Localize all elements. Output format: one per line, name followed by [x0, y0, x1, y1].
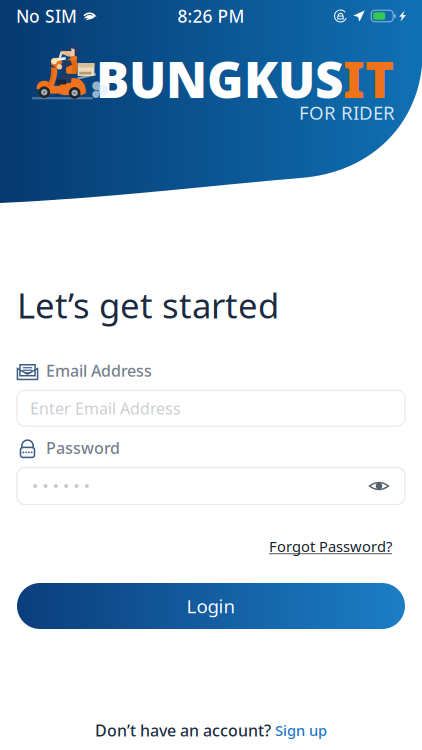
staticText: BUNGKUS: [96, 46, 343, 111]
button[interactable]: Show password: [366, 474, 392, 498]
staticText: IT: [343, 46, 394, 111]
staticText: Password: [46, 437, 120, 458]
staticText: Let’s get started: [17, 282, 279, 328]
button[interactable]: Don’t have an account?: [95, 720, 327, 741]
staticText: Enter Email Address: [30, 398, 181, 419]
button[interactable]: Login: [17, 583, 405, 629]
staticText: FOR RIDER: [299, 100, 395, 125]
staticText: 8:26 PM: [177, 4, 244, 27]
staticText: No SIM: [16, 4, 77, 27]
staticText: Sign up: [275, 721, 327, 740]
button[interactable]: Forgot Password?: [269, 536, 405, 556]
staticText: Login: [186, 594, 235, 618]
staticText: Forgot Password?: [269, 536, 392, 556]
staticText: Email Address: [46, 360, 152, 381]
staticText: Don’t have an account?: [95, 720, 275, 741]
